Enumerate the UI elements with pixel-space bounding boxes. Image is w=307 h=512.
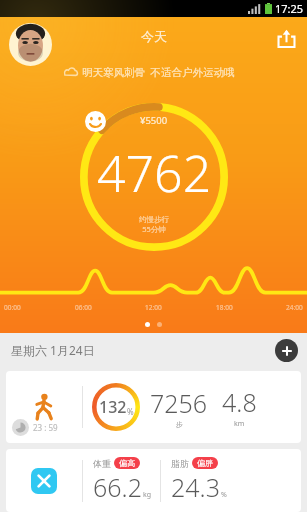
button[interactable]: 体重 <box>6 449 301 512</box>
staticText: 24:00 <box>286 303 303 312</box>
staticText: 脂肪 <box>171 458 189 469</box>
staticText: 55分钟 <box>142 224 166 234</box>
staticText: 体重 <box>93 458 111 469</box>
staticText: kg <box>143 490 152 500</box>
button[interactable]: Profile <box>9 23 52 66</box>
staticText: 18:00 <box>216 303 233 312</box>
staticText: 06:00 <box>75 303 92 312</box>
staticText: 今天 <box>141 28 167 44</box>
staticText: 00:00 <box>4 303 21 312</box>
staticText: ¥5500 <box>140 114 168 127</box>
staticText: 17:25 <box>275 1 304 16</box>
staticText: km <box>234 419 245 429</box>
staticText: 23 : 59 <box>33 422 58 433</box>
staticText: 24.3 <box>171 470 220 504</box>
button[interactable]: Mood <box>85 111 106 132</box>
staticText: 4.8 <box>222 385 257 419</box>
button[interactable]: 明天寒风刺骨 不适合户外运动哦 <box>64 65 235 79</box>
staticText: % <box>127 406 134 417</box>
staticText: 偏胖 <box>197 458 213 468</box>
staticText: 明天寒风刺骨 不适合户外运动哦 <box>82 65 235 79</box>
button[interactable]: Share <box>273 25 299 51</box>
staticText: 132 <box>99 396 127 418</box>
staticText: 4762 <box>97 139 212 207</box>
button[interactable]: Add <box>275 339 298 362</box>
staticText: % <box>221 490 227 500</box>
staticText: 偏高 <box>119 458 135 468</box>
staticText: 66.2 <box>93 470 142 504</box>
staticText: 星期六 1月24日 <box>11 342 95 358</box>
button[interactable]: ¥5500 <box>80 103 228 251</box>
staticText: 约慢步行 <box>139 215 169 224</box>
staticText: 7256 <box>150 386 208 420</box>
staticText: 12:00 <box>145 303 162 312</box>
staticText: 步 <box>176 420 183 429</box>
button[interactable]: 132 <box>6 371 301 443</box>
